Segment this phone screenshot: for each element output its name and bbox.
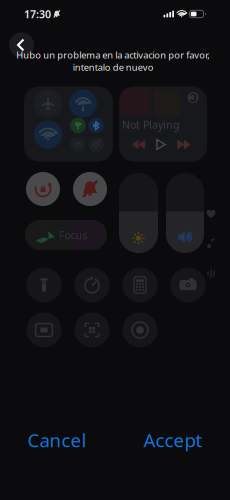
staticText: Focus [58, 228, 87, 242]
button[interactable]: Calculator [122, 267, 157, 302]
button[interactable]: Focus [25, 220, 107, 250]
button[interactable]: Cellular Data [69, 89, 97, 117]
button[interactable]: Timer [74, 267, 109, 302]
button[interactable]: Screen Recording [122, 312, 157, 347]
button[interactable]: Cancel [7, 423, 107, 457]
button[interactable]: Personal Hotspot [70, 137, 86, 152]
button[interactable]: AirPlay [187, 92, 198, 103]
staticText: Cancel [27, 428, 86, 452]
button[interactable]: Play [156, 139, 166, 150]
button[interactable]: Code Scanner [74, 312, 109, 347]
button[interactable]: Back [9, 32, 34, 57]
button[interactable]: Wi-Fi [34, 120, 62, 148]
button[interactable]: Screen Mirroring [26, 312, 61, 347]
staticText: Accept [143, 428, 202, 452]
button[interactable]: Silent Mode [73, 172, 107, 206]
button[interactable]: Camera [170, 267, 205, 302]
button[interactable]: AirDrop [70, 118, 86, 133]
button[interactable]: Accept [123, 423, 223, 457]
button[interactable]: Airplane Mode [34, 89, 62, 117]
button[interactable]: Volume [166, 173, 204, 253]
staticText: 17:30 [24, 7, 51, 21]
staticText: Not Playing [122, 117, 180, 132]
button[interactable]: Fast Forward [177, 140, 191, 149]
staticText: Hubo un problema en la activacion por fa… [16, 49, 210, 73]
button[interactable]: Bluetooth [88, 118, 104, 133]
button[interactable]: Rewind [132, 140, 145, 149]
button[interactable]: Flashlight [26, 267, 61, 302]
button[interactable]: Satellite [88, 137, 104, 152]
button[interactable]: Rotation Lock [26, 172, 60, 206]
button[interactable]: Brightness [119, 173, 158, 253]
